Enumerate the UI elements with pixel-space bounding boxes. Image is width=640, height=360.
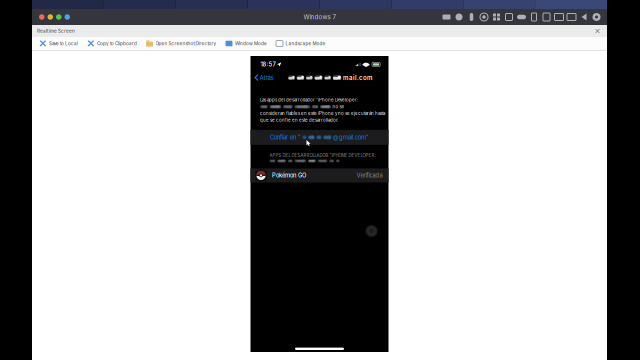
button[interactable]: Toolbar action [578,11,589,22]
button[interactable]: AssistiveTouch [365,225,377,237]
staticText: Atrás [259,74,273,81]
button[interactable]: Toolbar action [478,11,489,22]
staticText: Confiar en " [270,134,301,141]
button[interactable]: Toolbar action [528,11,539,22]
staticText: no se [332,104,344,109]
staticText: Open Screenshot Directory [155,41,216,46]
staticText: Verificada [356,172,382,179]
staticText: @gmail.com" [333,134,369,141]
button[interactable]: Toolbar action [541,11,552,22]
button[interactable]: Toolbar action [491,11,502,22]
button[interactable]: Toolbar action [503,11,514,22]
staticText: Windows 7 [303,13,335,21]
staticText: Window Mode [235,41,267,46]
button[interactable]: Toolbar action [516,11,527,22]
staticText: consideran fiables en este iPhone y no s… [260,111,385,116]
staticText: Landscape Mode [285,41,325,46]
staticText: mail.com [343,74,373,81]
staticText: Copy to Clipboard [97,41,137,46]
staticText: Save to Local [49,41,78,46]
staticText: que se confíe en este desarrollador. [260,117,338,123]
button[interactable]: Window Mode [225,38,267,49]
button[interactable]: Realtime Screen [32,26,75,36]
button[interactable]: Atrás [250,71,273,84]
button[interactable]: Minimize [47,14,53,20]
button[interactable]: Toolbar action [553,11,564,22]
button[interactable]: Toolbar action [591,11,602,22]
button[interactable]: Full screen [64,14,70,20]
button[interactable]: Zoom [56,14,61,20]
button[interactable]: Open Screenshot Directory [146,37,216,50]
staticText: Las apps del desarrollador "iPhone Devel… [260,97,358,103]
button[interactable]: Toolbar action [566,11,577,22]
staticText: 18:57 [260,61,275,68]
staticText: APPS DEL DESARROLLADOR "IPHONE DEVELOPER… [269,153,375,158]
button[interactable]: Toolbar action [453,11,464,22]
button[interactable]: Copy to Clipboard [87,37,137,50]
button[interactable]: Landscape Mode [276,37,325,49]
button[interactable]: Close tab [593,26,602,35]
button[interactable]: Toolbar action [466,11,477,22]
button[interactable]: Confiar en " [250,130,388,145]
button[interactable]: Close [39,14,44,20]
button[interactable]: Save to Local [39,37,78,50]
staticText: Pokémon GO [272,172,306,179]
button[interactable]: Pokémon GO [250,168,388,182]
button[interactable]: Toolbar action [441,11,452,22]
staticText: Realtime Screen [37,28,75,34]
